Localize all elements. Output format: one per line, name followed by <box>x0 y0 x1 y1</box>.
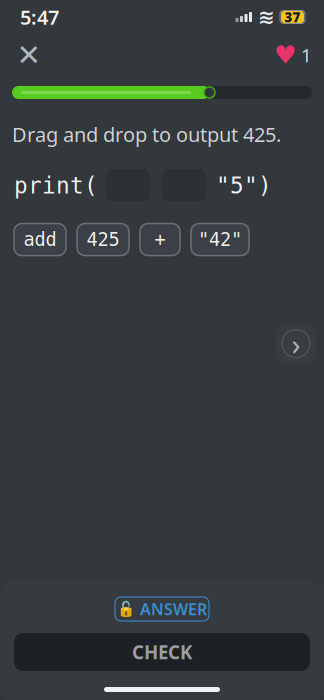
button[interactable]: add <box>14 224 66 256</box>
staticText: CHECK <box>132 640 192 664</box>
staticText: 1 <box>301 43 312 67</box>
staticText: + <box>154 229 165 250</box>
button[interactable]: CHECK <box>14 633 310 671</box>
staticText: 37 <box>284 8 300 26</box>
staticText: 425 <box>86 229 119 250</box>
button[interactable]: Next hint <box>276 324 316 364</box>
staticText: ✕ <box>16 38 41 72</box>
staticText: ♥ <box>274 41 297 69</box>
button[interactable]: "42" <box>191 224 249 256</box>
staticText: "5") <box>216 173 272 198</box>
staticText: add <box>23 229 56 250</box>
button[interactable]: 425 <box>77 224 129 256</box>
staticText: 5:47 <box>20 4 59 30</box>
staticText: 🔓 <box>117 601 135 617</box>
button[interactable]: Close <box>12 38 46 72</box>
staticText: "42" <box>198 229 242 250</box>
button[interactable]: 🔓 <box>115 597 209 621</box>
staticText: › <box>291 324 300 363</box>
staticText: Drag and drop to output 425. <box>12 121 281 148</box>
button[interactable]: Hearts remaining: 1 <box>274 38 312 72</box>
staticText: ANSWER <box>140 598 207 620</box>
button[interactable]: + <box>140 224 180 256</box>
staticText: ≋ <box>258 6 275 28</box>
staticText: print( <box>14 173 98 198</box>
